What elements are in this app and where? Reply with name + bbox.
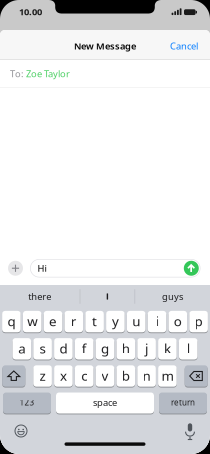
button[interactable]: guys bbox=[135, 285, 210, 308]
staticText: c bbox=[81, 367, 87, 384]
staticText: Zoe Taylor bbox=[24, 67, 70, 80]
staticText: 10.00 bbox=[19, 5, 42, 18]
staticText: o bbox=[174, 312, 182, 330]
staticText: j bbox=[145, 339, 148, 357]
button[interactable]: t bbox=[85, 310, 104, 333]
staticText: y bbox=[112, 312, 119, 330]
staticText: there bbox=[28, 290, 51, 303]
staticText: Hi bbox=[37, 262, 46, 274]
button[interactable]: l bbox=[179, 338, 197, 360]
button[interactable]: space bbox=[56, 392, 154, 414]
staticText: return bbox=[171, 397, 195, 408]
staticText: Cancel bbox=[170, 40, 198, 52]
staticText: i bbox=[155, 312, 158, 330]
button[interactable]: Add attachment bbox=[8, 261, 23, 276]
staticText: 123 bbox=[19, 397, 34, 408]
button[interactable]: u bbox=[127, 310, 145, 333]
button[interactable]: k bbox=[158, 338, 177, 360]
button[interactable]: m bbox=[158, 365, 177, 387]
staticText: r bbox=[71, 312, 77, 330]
staticText: v bbox=[101, 367, 108, 384]
staticText: g bbox=[101, 339, 109, 357]
staticText: space bbox=[93, 396, 117, 409]
button[interactable]: Cancel bbox=[170, 38, 210, 51]
button[interactable]: Shift bbox=[2, 365, 25, 387]
button[interactable]: z bbox=[33, 365, 52, 387]
button[interactable]: there bbox=[0, 285, 80, 308]
button[interactable]: w bbox=[23, 310, 41, 333]
button[interactable]: f bbox=[75, 338, 93, 360]
staticText: a bbox=[18, 339, 25, 357]
staticText: guys bbox=[162, 290, 183, 303]
button[interactable]: Delete bbox=[185, 365, 208, 387]
button[interactable]: r bbox=[64, 310, 83, 333]
staticText: w bbox=[27, 312, 37, 330]
staticText: z bbox=[40, 367, 46, 384]
button[interactable]: I bbox=[80, 285, 134, 308]
button[interactable]: y bbox=[106, 310, 125, 333]
staticText: s bbox=[40, 339, 46, 357]
button[interactable]: d bbox=[54, 338, 73, 360]
button[interactable]: i bbox=[148, 310, 166, 333]
button[interactable]: h bbox=[116, 338, 135, 360]
button[interactable]: q bbox=[2, 310, 21, 333]
button[interactable]: j bbox=[137, 338, 156, 360]
button[interactable]: 123 bbox=[3, 392, 51, 414]
staticText: d bbox=[59, 339, 67, 357]
button[interactable]: n bbox=[137, 365, 156, 387]
button[interactable]: Send bbox=[184, 261, 199, 276]
staticText: m bbox=[161, 367, 173, 384]
staticText: t bbox=[92, 312, 97, 330]
staticText: n bbox=[143, 367, 151, 384]
staticText: x bbox=[60, 367, 67, 384]
button[interactable]: g bbox=[96, 338, 114, 360]
staticText: New Message bbox=[74, 40, 136, 52]
staticText: h bbox=[122, 339, 130, 357]
staticText: u bbox=[132, 312, 140, 330]
button[interactable]: o bbox=[168, 310, 187, 333]
staticText: q bbox=[7, 312, 15, 330]
button[interactable]: a bbox=[12, 338, 31, 360]
button[interactable]: x bbox=[54, 365, 73, 387]
staticText: f bbox=[82, 339, 87, 357]
button[interactable]: Dictation bbox=[181, 421, 199, 441]
button[interactable]: e bbox=[44, 310, 62, 333]
staticText: p bbox=[195, 312, 203, 330]
button[interactable]: b bbox=[116, 365, 135, 387]
button[interactable]: s bbox=[33, 338, 52, 360]
button[interactable]: v bbox=[96, 365, 114, 387]
button[interactable]: Emoji bbox=[10, 421, 32, 441]
staticText: l bbox=[187, 339, 190, 357]
staticText: b bbox=[122, 367, 130, 384]
button[interactable]: c bbox=[75, 365, 93, 387]
button[interactable]: return bbox=[159, 392, 207, 414]
staticText: e bbox=[49, 312, 57, 330]
staticText: To: bbox=[10, 67, 24, 80]
staticText: k bbox=[164, 339, 171, 357]
button[interactable]: p bbox=[189, 310, 208, 333]
